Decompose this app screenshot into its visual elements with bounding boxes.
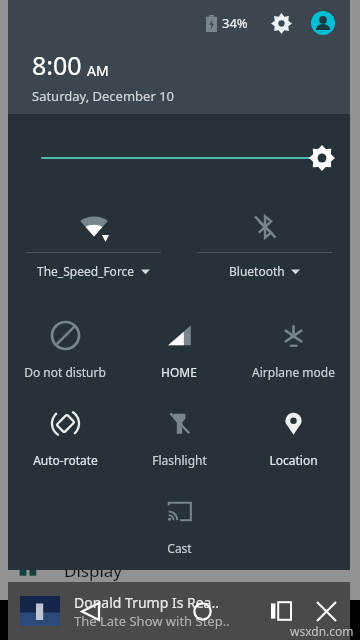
staticText: wsxdn.com <box>290 623 354 639</box>
staticText: 8:00 <box>32 48 82 82</box>
staticText: 34% <box>222 14 248 32</box>
staticText: The Late Show with Step.. <box>74 612 230 630</box>
staticText: Airplane mode <box>252 364 335 380</box>
button[interactable]: Settings <box>266 8 296 38</box>
button[interactable]: User <box>308 8 338 38</box>
staticText: The_Speed_Force <box>37 263 135 279</box>
button[interactable]: Split screen <box>264 594 298 628</box>
staticText: Donald Trump Is Rea.. <box>74 593 219 612</box>
staticText: Display <box>64 559 122 582</box>
staticText: Location <box>269 452 318 468</box>
staticText: AM <box>87 61 109 80</box>
staticText: Cast <box>167 540 192 556</box>
button[interactable]: HOME <box>122 304 236 392</box>
button[interactable]: Cast <box>122 480 236 568</box>
button[interactable]: Location <box>236 392 350 480</box>
button[interactable]: Brightness <box>8 140 350 176</box>
staticText: HOME <box>161 364 197 380</box>
button[interactable]: Flashlight <box>122 392 236 480</box>
staticText: Flashlight <box>152 452 207 468</box>
button[interactable]: Back <box>68 589 112 633</box>
staticText: Bluetooth <box>229 263 285 279</box>
staticText: Auto-rotate <box>33 452 98 468</box>
button[interactable]: Home <box>180 589 224 633</box>
button[interactable]: Do not disturb <box>8 304 122 392</box>
button[interactable]: Close <box>308 593 344 629</box>
button[interactable]: The_Speed_Force <box>8 200 179 292</box>
staticText: Do not disturb <box>24 364 106 380</box>
button[interactable]: Bluetooth <box>179 200 350 292</box>
staticText: Saturday, December 10 <box>32 87 175 105</box>
button[interactable]: Airplane mode <box>236 304 350 392</box>
button[interactable]: Auto-rotate <box>8 392 122 480</box>
